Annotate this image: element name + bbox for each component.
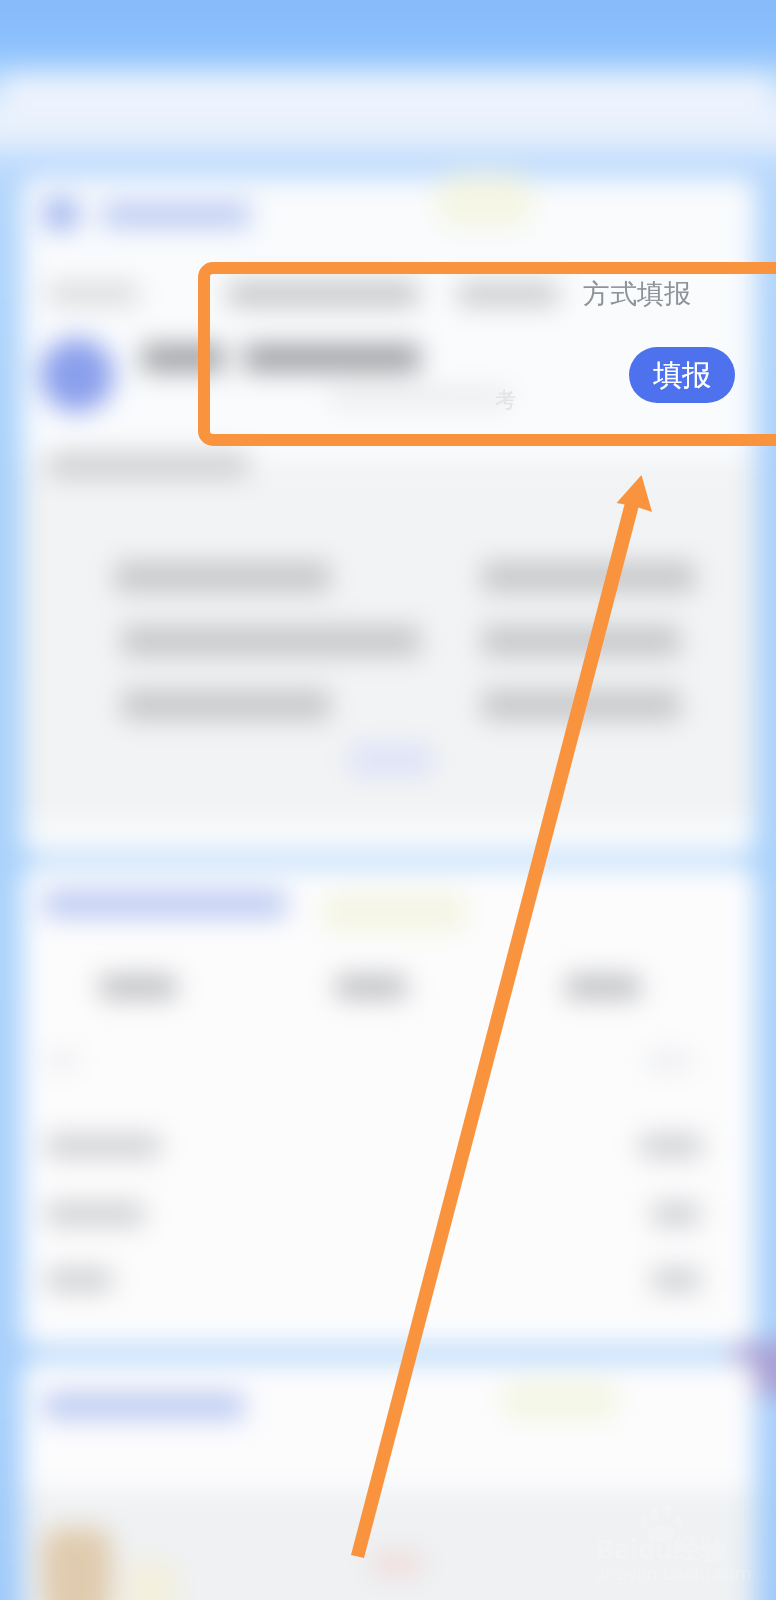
staticText: 考 (495, 387, 516, 413)
staticText: 方式填报 (583, 277, 691, 311)
other: Highlight annotation (0, 0, 776, 1600)
button[interactable]: 填报 (629, 347, 735, 403)
staticText: 填报 (653, 357, 711, 394)
staticText: jingyan.baidu.com (596, 1561, 752, 1586)
